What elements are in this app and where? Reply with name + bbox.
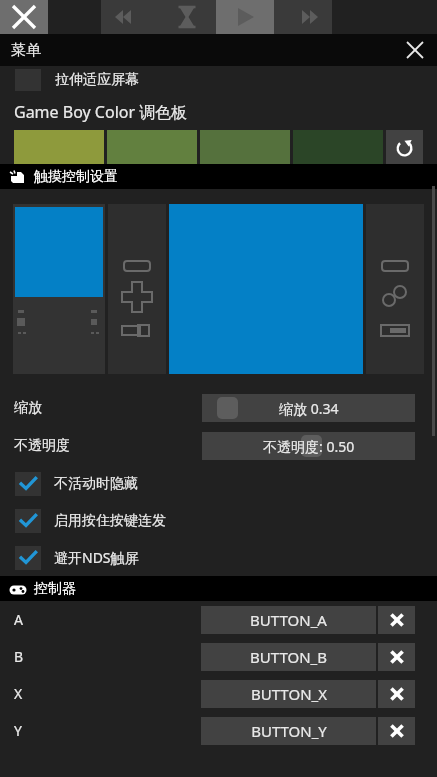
staticText: A [14, 610, 23, 629]
button[interactable]: BUTTON_B [201, 643, 376, 671]
button[interactable]: Reset palette [386, 130, 423, 164]
staticText: 缩放 [14, 399, 42, 417]
button[interactable]: 不透明度: 0.50 [202, 432, 415, 460]
button[interactable]: Close menu [401, 36, 429, 64]
button[interactable]: 拉伸适应屏幕 [0, 66, 437, 93]
button[interactable]: Fast forward [274, 0, 332, 34]
staticText: 拉伸适应屏幕 [55, 71, 139, 89]
button[interactable]: BUTTON_Y [201, 717, 376, 745]
staticText: 触摸控制设置 [34, 168, 118, 186]
button[interactable]: BUTTON_A [201, 606, 376, 634]
button[interactable]: 不活动时隐藏 [0, 465, 437, 502]
button[interactable]: Clear Y binding [378, 717, 415, 745]
button[interactable]: Clear A binding [378, 606, 415, 634]
staticText: 不活动时隐藏 [54, 475, 138, 493]
staticText: 不透明度 [14, 437, 70, 455]
staticText: 不透明度: 0.50 [263, 437, 355, 456]
staticText: 启用按住按键连发 [54, 512, 166, 530]
staticText: 控制器 [34, 580, 76, 598]
button[interactable]: Clear B binding [378, 643, 415, 671]
button[interactable]: Play [216, 0, 274, 34]
button[interactable]: 启用按住按键连发 [0, 502, 437, 539]
staticText: BUTTON_B [250, 647, 327, 667]
button[interactable]: BUTTON_X [201, 680, 376, 708]
button[interactable]: Close [0, 0, 48, 34]
staticText: BUTTON_Y [251, 721, 327, 741]
staticText: 缩放 0.34 [279, 399, 339, 418]
staticText: Y [14, 721, 22, 740]
button[interactable]: 避开NDS触屏 [0, 539, 437, 576]
button[interactable]: 缩放 0.34 [202, 394, 415, 422]
staticText: 菜单 [11, 41, 41, 60]
staticText: 避开NDS触屏 [54, 548, 139, 567]
button[interactable]: Clear X binding [378, 680, 415, 708]
staticText: BUTTON_A [250, 610, 327, 630]
staticText: Game Boy Color 调色板 [14, 101, 188, 123]
staticText: BUTTON_X [251, 684, 327, 704]
button[interactable]: Frame advance [158, 0, 216, 34]
staticText: B [14, 647, 24, 666]
staticText: X [14, 684, 23, 703]
button[interactable]: Rewind [101, 0, 158, 34]
